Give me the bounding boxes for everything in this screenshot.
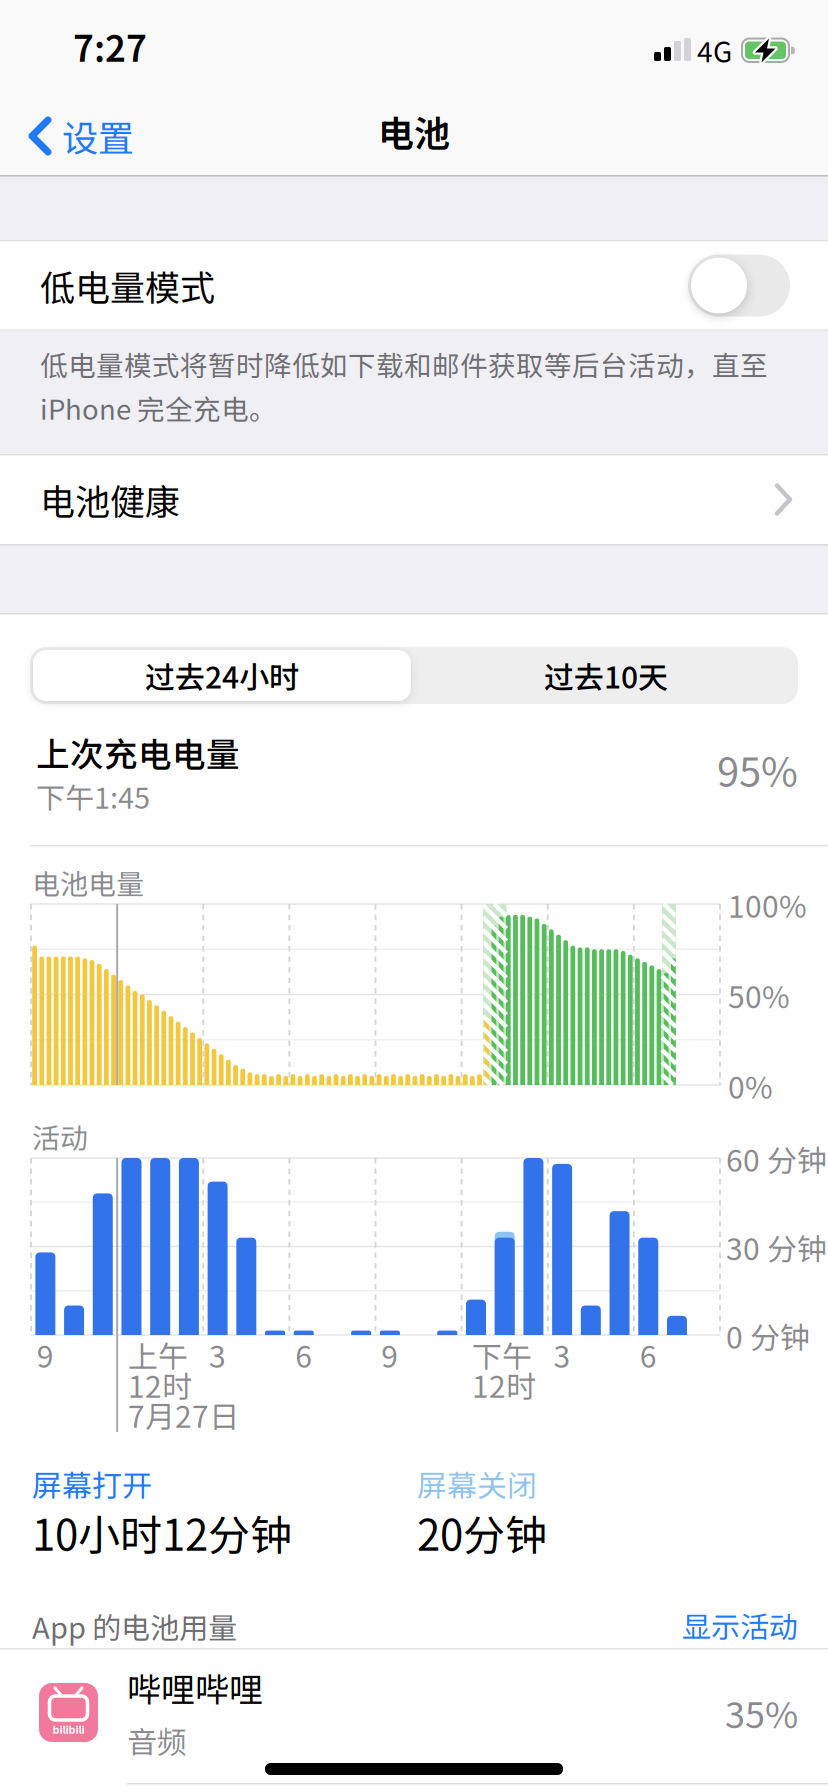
staticText: 7:27 xyxy=(73,20,147,72)
staticText: 7月27日 xyxy=(128,1393,239,1436)
staticText: 过去24小时 xyxy=(145,654,299,697)
button[interactable]: 过去24小时 xyxy=(33,650,411,701)
staticText: 0 分钟 xyxy=(726,1314,810,1357)
button[interactable]: bilibili xyxy=(0,1650,828,1775)
staticText: 0% xyxy=(728,1064,773,1107)
staticText: 低电量模式将暂时降低如下载和邮件获取等后台活动，直至 iPhone 完全充电。 xyxy=(40,344,768,428)
button[interactable]: 低电量模式 xyxy=(0,241,828,329)
staticText: 屏幕打开 xyxy=(32,1462,152,1505)
staticText: 活动 xyxy=(32,1116,88,1156)
staticText: 50% xyxy=(728,973,790,1017)
staticText: 30 分钟 xyxy=(726,1225,827,1269)
staticText: 9 xyxy=(37,1333,54,1376)
staticText: 过去10天 xyxy=(544,654,668,697)
staticText: 6 xyxy=(295,1333,312,1376)
staticText: 35% xyxy=(725,1686,798,1738)
staticText: 上次充电电量 xyxy=(36,728,240,776)
staticText: 电池健康 xyxy=(40,474,180,525)
staticText: App 的电池用量 xyxy=(32,1605,237,1647)
staticText: 9 xyxy=(381,1333,398,1376)
staticText: 低电量模式 xyxy=(40,260,215,311)
staticText: 20分钟 xyxy=(417,1502,547,1563)
staticText: 屏幕关闭 xyxy=(417,1462,537,1505)
button[interactable]: 显示活动 xyxy=(682,1604,798,1646)
staticText: 100% xyxy=(728,883,807,926)
staticText: 哔哩哔哩 xyxy=(127,1663,263,1712)
staticText: 4G xyxy=(697,30,732,70)
staticText: 下午1:45 xyxy=(36,775,150,817)
staticText: 下午 xyxy=(472,1333,532,1376)
button[interactable]: 过去10天 xyxy=(417,650,795,701)
staticText: 3 xyxy=(209,1333,226,1376)
staticText: 音频 xyxy=(127,1718,187,1762)
staticText: 95% xyxy=(717,740,798,798)
staticText: 12时 xyxy=(128,1363,192,1406)
staticText: 设置 xyxy=(62,110,134,162)
staticText: 上午 xyxy=(128,1333,188,1376)
staticText: 3 xyxy=(554,1333,571,1376)
staticText: 6 xyxy=(640,1333,657,1376)
staticText: 显示活动 xyxy=(682,1604,798,1646)
staticText: 12时 xyxy=(472,1363,536,1406)
staticText: 60 分钟 xyxy=(726,1137,827,1180)
button[interactable]: 电池健康 xyxy=(0,455,828,543)
staticText: 10小时12分钟 xyxy=(32,1502,292,1563)
staticText: 电池 xyxy=(378,105,450,157)
button[interactable]: 设置 xyxy=(28,106,134,166)
staticText: bilibili xyxy=(52,1721,84,1737)
staticText: 电池电量 xyxy=(32,862,144,902)
